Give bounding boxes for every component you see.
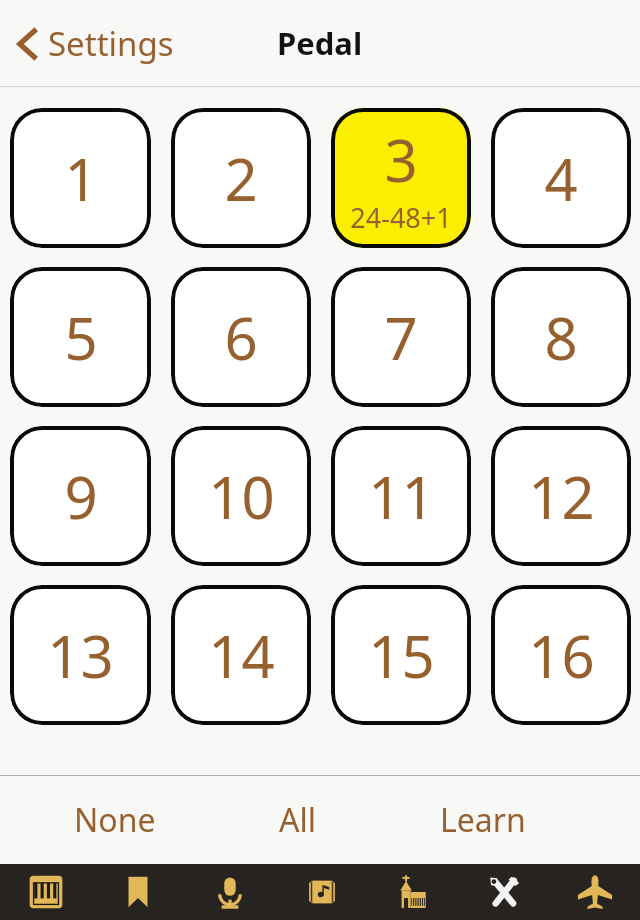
button[interactable]: 8 xyxy=(491,267,631,407)
staticText: 7 xyxy=(384,298,418,377)
staticText: All xyxy=(279,798,316,842)
staticText: Learn xyxy=(440,798,526,842)
staticText: 4 xyxy=(544,139,578,218)
staticText: 8 xyxy=(544,298,578,377)
button[interactable]: 11 xyxy=(331,426,471,566)
button[interactable]: 3 xyxy=(331,108,471,248)
staticText: 9 xyxy=(64,457,98,536)
button[interactable]: 10 xyxy=(171,426,311,566)
button[interactable]: Record xyxy=(184,864,276,920)
button[interactable]: 1 xyxy=(10,108,151,248)
button[interactable]: Settings xyxy=(458,864,549,920)
button[interactable]: 7 xyxy=(331,267,471,407)
staticText: 14 xyxy=(208,616,275,695)
button[interactable]: Settings xyxy=(0,13,188,74)
staticText: 10 xyxy=(208,457,275,536)
button[interactable]: 6 xyxy=(171,267,311,407)
button[interactable]: 16 xyxy=(491,585,631,725)
button[interactable]: All xyxy=(265,788,330,852)
button[interactable]: 14 xyxy=(171,585,311,725)
staticText: 6 xyxy=(224,298,258,377)
button[interactable]: Keyboard xyxy=(0,864,92,920)
staticText: 1 xyxy=(64,139,98,218)
button[interactable]: Songbook xyxy=(276,864,367,920)
button[interactable]: Organ xyxy=(367,864,458,920)
button[interactable]: 5 xyxy=(10,267,151,407)
button[interactable]: Bookmarks xyxy=(92,864,184,920)
button[interactable]: 4 xyxy=(491,108,631,248)
staticText: Settings xyxy=(48,21,174,66)
button[interactable]: Travel xyxy=(549,864,640,920)
button[interactable]: 12 xyxy=(491,426,631,566)
staticText: 5 xyxy=(64,298,98,377)
button[interactable]: Learn xyxy=(426,788,540,852)
staticText: None xyxy=(74,798,156,842)
button[interactable]: 2 xyxy=(171,108,311,248)
staticText: 16 xyxy=(528,616,595,695)
button[interactable]: None xyxy=(60,788,170,852)
staticText: Pedal xyxy=(277,22,363,64)
button[interactable]: 15 xyxy=(331,585,471,725)
staticText: 13 xyxy=(47,616,114,695)
button[interactable]: 13 xyxy=(10,585,151,725)
staticText: 3 xyxy=(384,120,418,199)
staticText: 11 xyxy=(368,457,435,536)
staticText: 24-48+1 xyxy=(350,199,452,236)
button[interactable]: 9 xyxy=(10,426,151,566)
staticText: 12 xyxy=(528,457,595,536)
staticText: 2 xyxy=(224,139,258,218)
staticText: 15 xyxy=(368,616,435,695)
